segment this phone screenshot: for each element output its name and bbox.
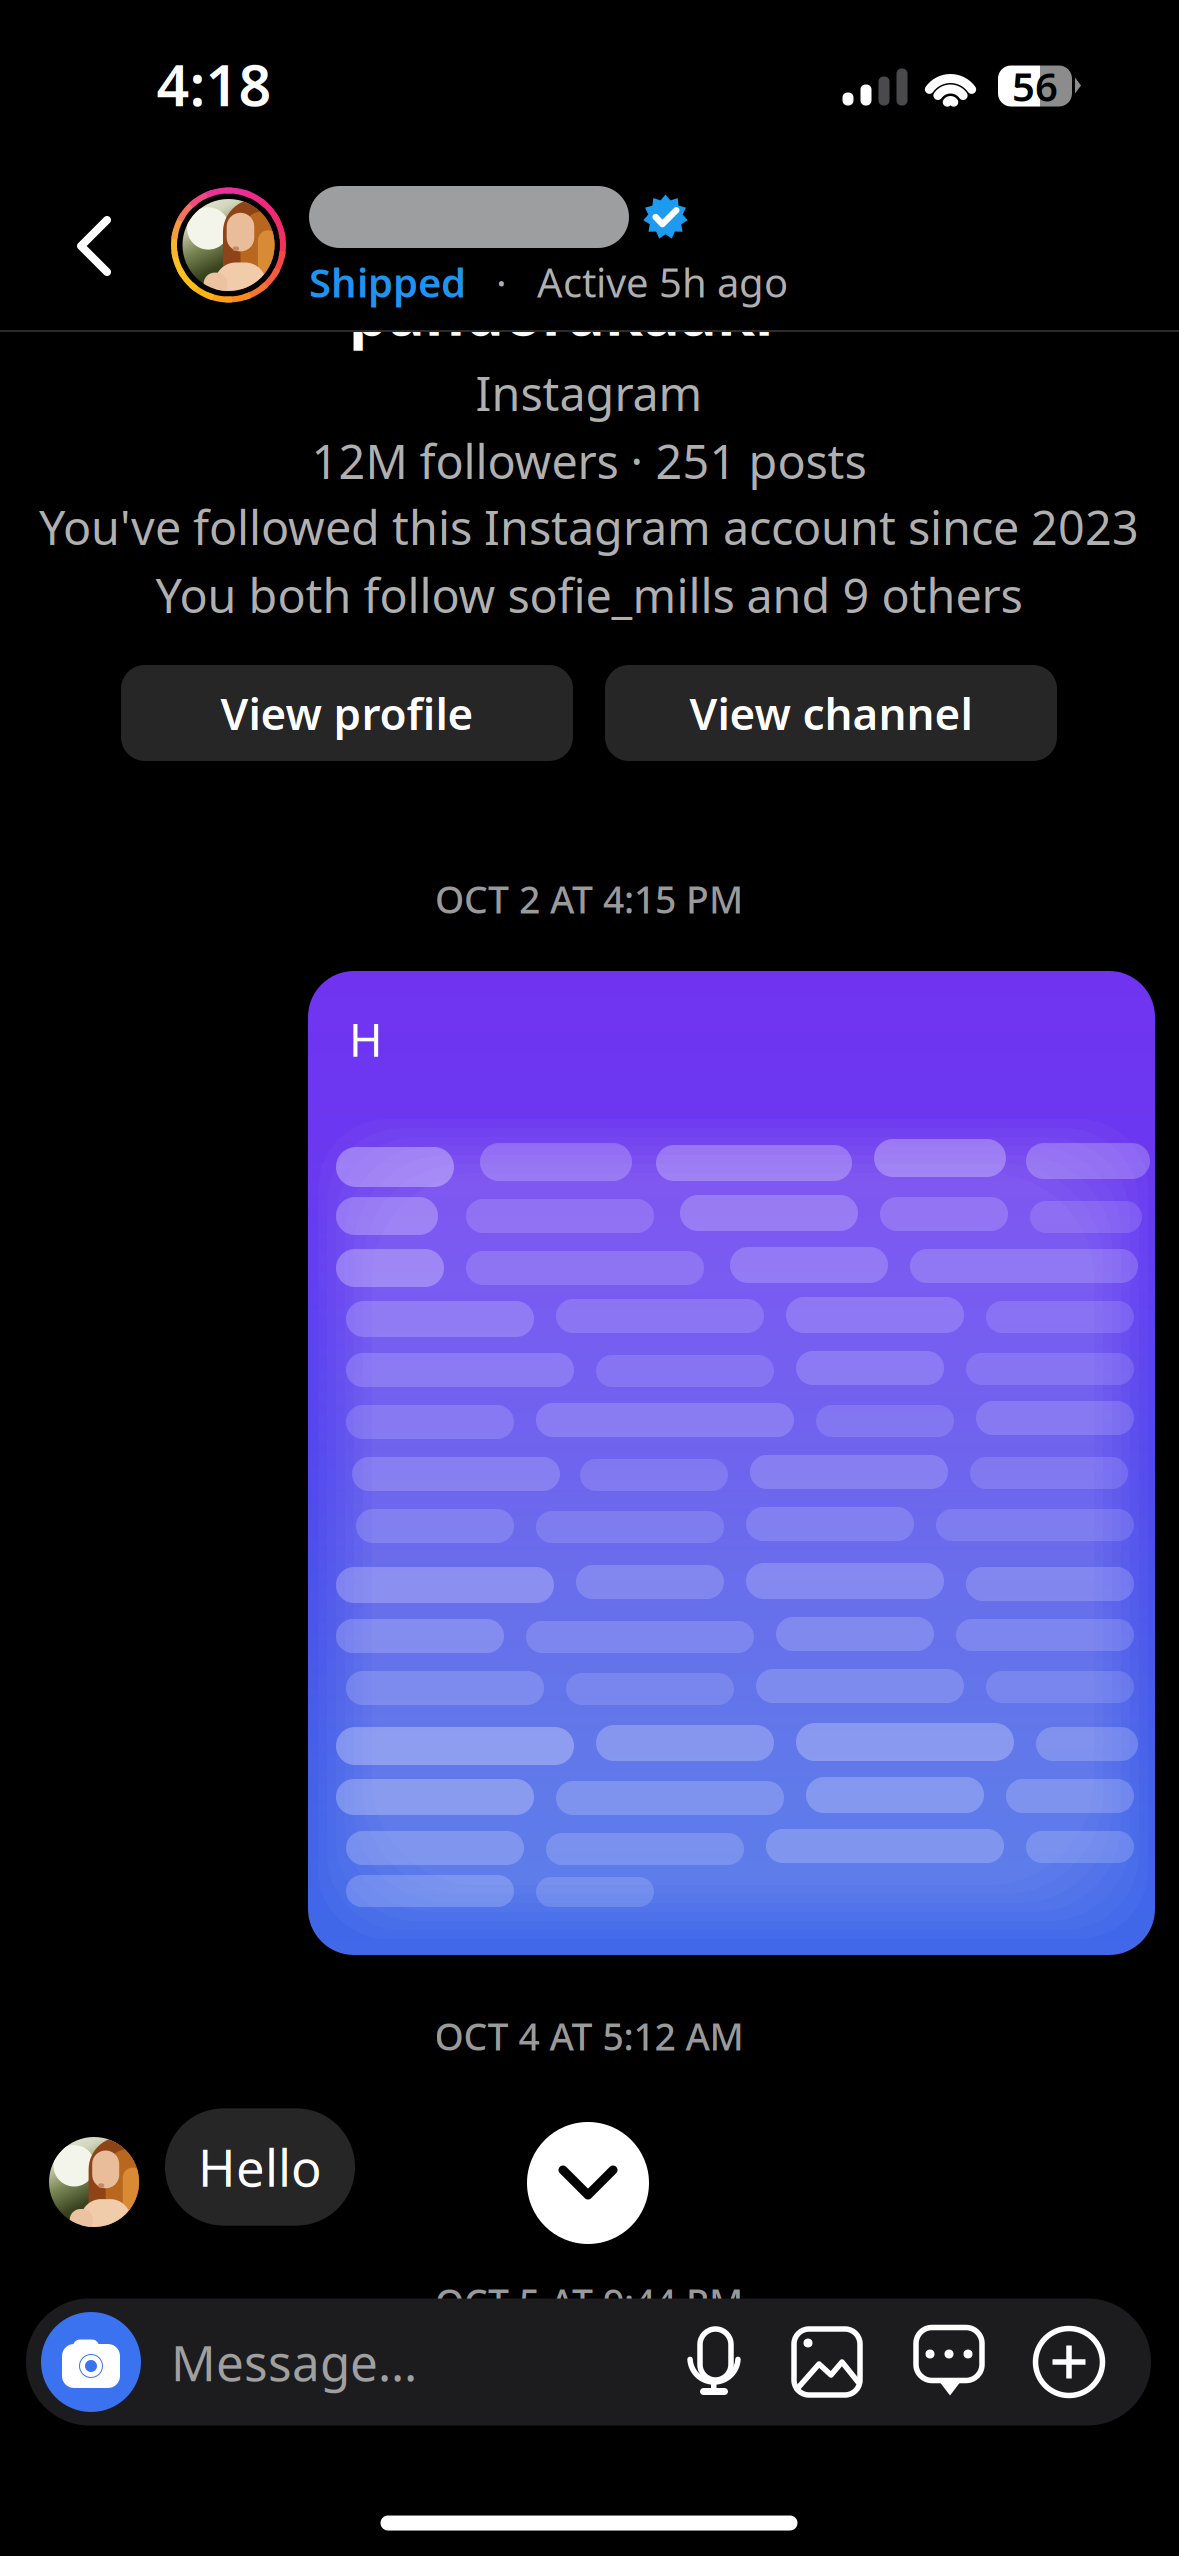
button[interactable]: More options xyxy=(1035,2320,1103,2404)
staticText: You've followed this Instagram account s… xyxy=(39,496,1139,558)
button[interactable]: Stickers xyxy=(915,2320,983,2404)
staticText: H xyxy=(349,1009,383,1069)
button[interactable]: Voice message xyxy=(687,2320,741,2404)
staticText: Active 5h ago xyxy=(537,255,788,308)
staticText: Message... xyxy=(171,2329,417,2395)
button[interactable]: Back xyxy=(42,186,146,306)
button[interactable]: Photo library xyxy=(793,2320,861,2404)
staticText: View profile xyxy=(220,684,473,742)
button[interactable]: View channel xyxy=(605,665,1057,761)
staticText: Shipped xyxy=(309,255,466,308)
staticText: 4:18 xyxy=(156,46,271,122)
button[interactable]: Shipped xyxy=(0,175,1179,315)
staticText: You both follow sofie_mills and 9 others xyxy=(155,564,1022,626)
staticText: OCT 5 AT 9:44 PM xyxy=(435,2277,743,2327)
staticText: · xyxy=(466,255,537,308)
staticText: 56 xyxy=(1012,59,1058,112)
staticText: Hello xyxy=(198,2133,322,2201)
staticText: View channel xyxy=(689,684,972,742)
staticText: pandorakaaki xyxy=(349,271,773,353)
staticText: 12M followers · 251 posts xyxy=(311,430,866,492)
staticText: OCT 2 AT 4:15 PM xyxy=(435,874,743,924)
button[interactable]: View profile xyxy=(121,665,573,761)
button[interactable]: Camera xyxy=(41,2312,141,2412)
staticText: Instagram xyxy=(475,362,702,424)
button[interactable]: Scroll to latest message xyxy=(527,2122,649,2244)
staticText: OCT 4 AT 5:12 AM xyxy=(434,2011,743,2061)
